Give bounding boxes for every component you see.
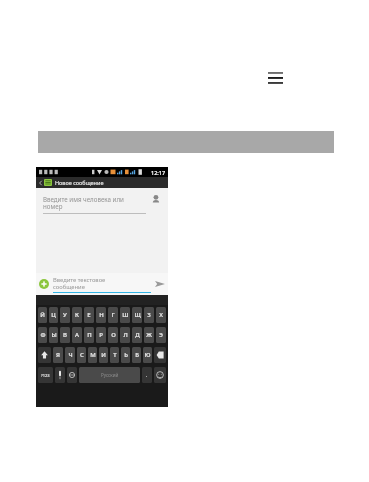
staticText: Ф [40, 331, 46, 339]
staticText: Б [135, 351, 139, 359]
button[interactable]: Ю [143, 347, 152, 363]
button[interactable]: Ц [49, 307, 58, 323]
staticText: Е [87, 311, 91, 319]
button[interactable]: Й [38, 307, 47, 323]
staticText: И [101, 351, 106, 359]
staticText: Й [40, 311, 45, 319]
staticText: Ц [51, 311, 56, 319]
button[interactable]: Key [55, 367, 65, 383]
staticText: Ш [122, 311, 129, 319]
staticText: Щ [134, 311, 141, 319]
button[interactable]: О [108, 327, 118, 343]
button[interactable]: Д [132, 327, 142, 343]
button[interactable]: У [60, 307, 70, 323]
staticText: . [146, 372, 148, 379]
staticText: П [87, 331, 92, 339]
button[interactable]: Ж [144, 327, 154, 343]
button[interactable]: Key [154, 347, 166, 363]
button[interactable]: И [99, 347, 108, 363]
button[interactable]: Ш [120, 307, 130, 323]
staticText: Ь [124, 351, 128, 359]
button[interactable]: Н [96, 307, 106, 323]
button[interactable]: Е [84, 307, 94, 323]
button[interactable]: Attach [39, 279, 49, 289]
staticText: Новое сообщение [55, 179, 104, 186]
button[interactable]: Г [108, 307, 118, 323]
staticText: А [75, 331, 79, 339]
button[interactable]: П [84, 327, 94, 343]
staticText: Э [159, 331, 163, 339]
button[interactable]: З [144, 307, 154, 323]
staticText: М [90, 351, 96, 359]
staticText: ?123 [41, 373, 50, 378]
button[interactable]: Key [67, 367, 77, 383]
staticText: Л [123, 331, 128, 339]
staticText: 12:17 [151, 169, 166, 176]
button[interactable]: К [72, 307, 82, 323]
button[interactable]: Р [96, 327, 106, 343]
button[interactable]: В [60, 327, 70, 343]
button[interactable]: ?123 [38, 367, 53, 383]
button[interactable]: Key [38, 347, 51, 363]
button[interactable]: Menu [264, 68, 290, 90]
button[interactable]: Э [156, 327, 166, 343]
staticText: Ч [68, 351, 73, 359]
button[interactable]: Щ [132, 307, 142, 323]
button[interactable]: С [77, 347, 86, 363]
button[interactable]: Ч [65, 347, 75, 363]
button[interactable]: Ы [49, 327, 58, 343]
button[interactable]: Ь [121, 347, 130, 363]
staticText: Д [135, 331, 140, 339]
button[interactable]: Ф [38, 327, 47, 343]
staticText: Я [56, 351, 60, 359]
button[interactable]: А [72, 327, 82, 343]
staticText: Т [113, 351, 117, 359]
button[interactable]: М [88, 347, 97, 363]
staticText: У [63, 311, 67, 319]
button[interactable]: Новое сообщение [36, 177, 168, 188]
button[interactable]: Send [154, 278, 166, 290]
button[interactable]: Б [132, 347, 141, 363]
staticText: Н [99, 311, 104, 319]
button[interactable]: Х [156, 307, 166, 323]
staticText: Введите имя человека или номер [43, 195, 124, 211]
button[interactable]: Л [120, 327, 130, 343]
staticText: С [80, 351, 84, 359]
staticText: В [63, 331, 67, 339]
button[interactable]: Я [53, 347, 63, 363]
button[interactable]: Key [154, 367, 166, 383]
button[interactable]: Add recipient [151, 194, 162, 205]
staticText: Г [111, 311, 115, 319]
staticText: Введите текстовое сообщение [53, 276, 106, 291]
staticText: Х [159, 311, 163, 319]
staticText: О [111, 331, 116, 339]
staticText: Ю [144, 351, 151, 359]
staticText: Ж [146, 331, 152, 339]
staticText: Р [99, 331, 103, 339]
staticText: К [75, 311, 79, 319]
staticText: Русский [101, 372, 119, 378]
button[interactable]: Т [110, 347, 119, 363]
button[interactable]: . [142, 367, 152, 383]
button[interactable]: Русский [79, 367, 140, 383]
staticText: З [147, 311, 151, 319]
staticText: Ы [51, 331, 57, 339]
button[interactable]: Введите текстовое сообщение [53, 276, 151, 293]
